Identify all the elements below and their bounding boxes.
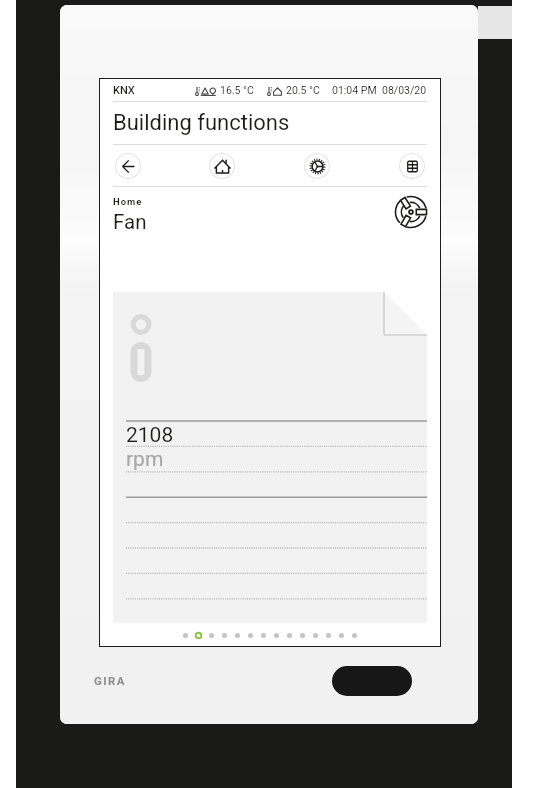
staticText: rpm <box>126 447 164 472</box>
button[interactable]: Apps <box>399 153 425 179</box>
staticText: Building functions <box>113 110 290 136</box>
staticText: Home <box>113 196 143 207</box>
staticText: GIRA <box>94 674 126 687</box>
button[interactable]: Page indicator <box>100 623 440 646</box>
staticText: Fan <box>113 210 147 234</box>
staticText: 16.5 °C <box>220 84 254 96</box>
staticText: 08/03/20 <box>382 84 427 96</box>
staticText: KNX <box>113 84 135 97</box>
button[interactable]: Home / Fan <box>100 187 440 240</box>
staticText: 2108 <box>126 423 174 448</box>
button[interactable]: Home <box>209 153 235 179</box>
staticText: 01:04 PM <box>332 84 377 96</box>
button[interactable]: Fan speed 2108 rpm <box>113 292 427 623</box>
button[interactable]: Home button <box>332 666 412 696</box>
button[interactable]: Settings <box>304 153 330 179</box>
staticText: 20.5 °C <box>286 84 320 96</box>
button[interactable]: Back <box>115 153 141 179</box>
